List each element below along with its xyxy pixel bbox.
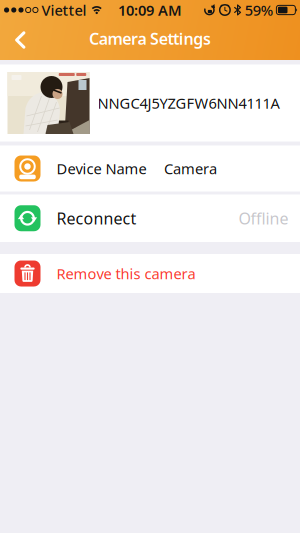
button[interactable]: Reconnect bbox=[0, 194, 300, 242]
staticText: Camera bbox=[164, 159, 217, 178]
button[interactable]: Device Name bbox=[0, 145, 300, 191]
staticText: Viettel bbox=[42, 0, 87, 20]
staticText: Camera Settings bbox=[89, 28, 211, 49]
staticText: Offline bbox=[238, 208, 288, 229]
button[interactable]: Back bbox=[0, 20, 43, 60]
staticText: 59% bbox=[245, 0, 273, 20]
staticText: 10:09 AM bbox=[118, 0, 182, 20]
staticText: NNGC4J5YZGFW6NN4111A bbox=[97, 93, 279, 113]
button[interactable]: NNGC4J5YZGFW6NN4111A bbox=[0, 64, 300, 141]
button[interactable]: Remove this camera bbox=[0, 254, 300, 293]
staticText: Reconnect bbox=[56, 208, 136, 229]
staticText: Remove this camera bbox=[56, 264, 195, 283]
staticText: Device Name bbox=[56, 159, 146, 178]
